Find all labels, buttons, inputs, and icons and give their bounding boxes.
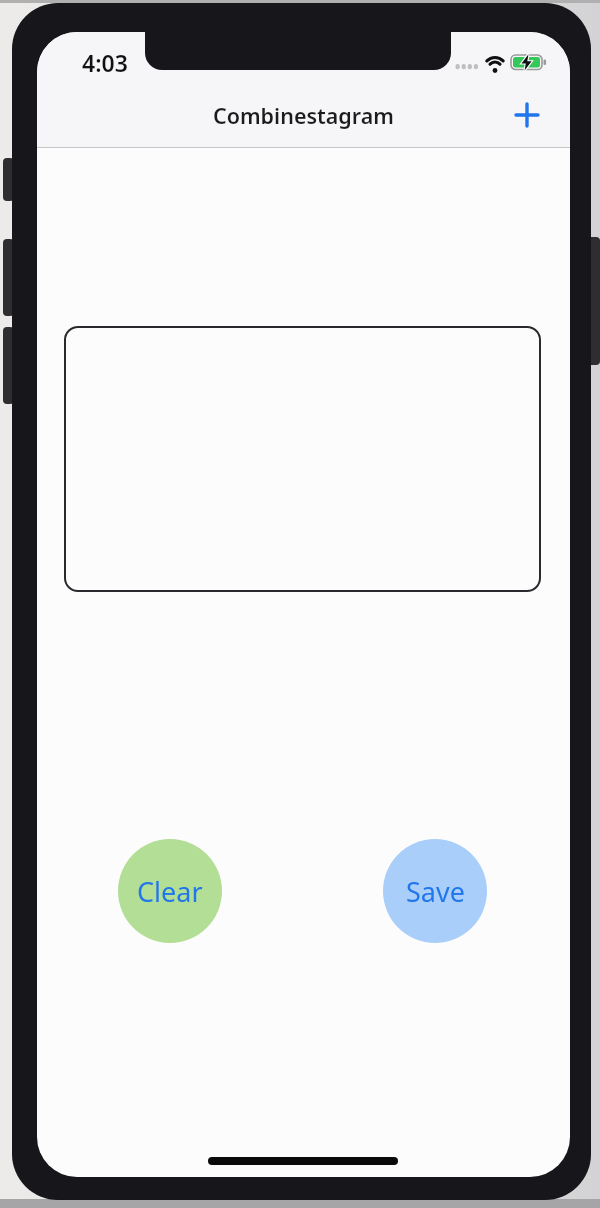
- staticText: Combinestagram: [213, 101, 394, 130]
- staticText: Clear: [137, 873, 203, 910]
- staticText: Save: [406, 873, 465, 910]
- staticText: 4:03: [82, 47, 128, 78]
- button[interactable]: Clear: [118, 839, 222, 943]
- button[interactable]: [505, 93, 549, 137]
- button[interactable]: Save: [383, 839, 487, 943]
